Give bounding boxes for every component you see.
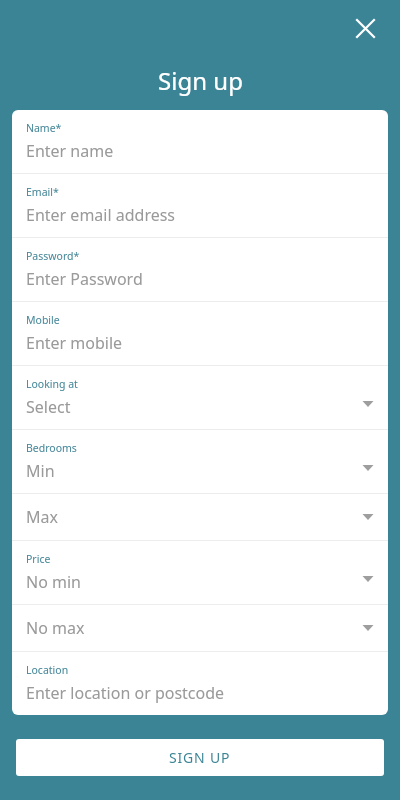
- staticText: Email*: [26, 185, 59, 199]
- staticText: Enter location or postcode: [26, 682, 225, 704]
- staticText: No min: [26, 571, 81, 593]
- button[interactable]: Bedrooms: [12, 430, 388, 493]
- staticText: Password*: [26, 249, 80, 263]
- button[interactable]: Looking at: [12, 366, 388, 429]
- button[interactable]: SIGN UP: [16, 739, 384, 776]
- button[interactable]: Close: [348, 11, 382, 45]
- staticText: Mobile: [26, 313, 60, 327]
- staticText: SIGN UP: [169, 748, 231, 767]
- staticText: Enter email address: [26, 204, 176, 226]
- staticText: Sign up: [158, 64, 243, 97]
- staticText: No max: [26, 617, 85, 639]
- button[interactable]: Name*: [12, 110, 388, 173]
- button[interactable]: Price: [12, 541, 388, 604]
- staticText: Price: [26, 552, 51, 566]
- button[interactable]: Mobile: [12, 302, 388, 365]
- staticText: Enter Password: [26, 268, 143, 290]
- staticText: Select: [26, 396, 71, 418]
- button[interactable]: No max: [12, 605, 388, 651]
- staticText: Max: [26, 506, 58, 528]
- button[interactable]: Max: [12, 494, 388, 540]
- button[interactable]: Location: [12, 652, 388, 715]
- staticText: Min: [26, 460, 55, 482]
- staticText: Enter mobile: [26, 332, 123, 354]
- staticText: Location: [26, 663, 69, 677]
- button[interactable]: Password*: [12, 238, 388, 301]
- button[interactable]: Email*: [12, 174, 388, 237]
- staticText: Name*: [26, 121, 62, 135]
- staticText: Bedrooms: [26, 441, 77, 455]
- staticText: Enter name: [26, 140, 114, 162]
- staticText: Looking at: [26, 377, 78, 391]
